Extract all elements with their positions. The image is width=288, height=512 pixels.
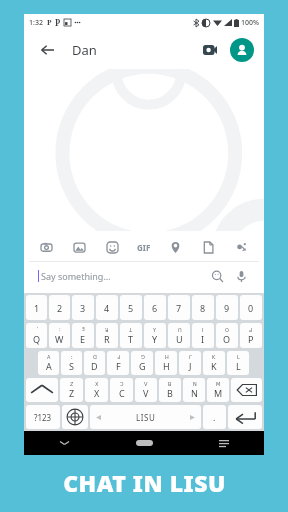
button[interactable]: LISU — [90, 405, 201, 429]
button[interactable]: ?123 — [26, 405, 60, 429]
button[interactable]: Hide keyboard — [24, 431, 104, 455]
button[interactable]: ꓤ — [96, 323, 118, 348]
button[interactable]: ꓛ — [110, 378, 133, 402]
staticText: ꓐ — [168, 381, 172, 387]
button[interactable]: ꓬ — [144, 323, 166, 348]
staticText: ꓬ — [153, 327, 157, 333]
staticText: 5 — [128, 302, 134, 314]
button[interactable]: Change language — [62, 405, 88, 429]
button[interactable]: ꓮ — [38, 351, 59, 375]
button[interactable]: 8 — [192, 295, 214, 320]
button[interactable]: ꓽ — [61, 351, 82, 375]
button[interactable]: ꓷ — [84, 351, 105, 375]
staticText: A — [46, 360, 52, 372]
button[interactable]: Ǝ — [72, 323, 94, 348]
staticText: GIF — [137, 242, 151, 253]
staticText: ꓒ — [249, 327, 253, 333]
staticText: 2 — [57, 302, 63, 314]
button[interactable]: Gallery — [71, 239, 88, 256]
staticText: 9 — [224, 302, 230, 314]
staticText: V — [143, 387, 149, 399]
staticText: ?123 — [34, 412, 52, 423]
button[interactable]: Location — [167, 239, 184, 256]
staticText: R — [104, 333, 110, 345]
button[interactable]: Camera — [38, 239, 55, 256]
button[interactable]: Stickers — [104, 239, 121, 256]
button[interactable]: Backspace — [231, 378, 262, 402]
staticText: ꓧ — [165, 354, 169, 360]
button[interactable]: ꓲ — [192, 323, 214, 348]
button[interactable]: 2 — [49, 295, 70, 320]
button[interactable]: Search emoji — [208, 267, 226, 285]
staticText: 100% — [241, 18, 259, 28]
staticText: ꓗ — [212, 354, 216, 360]
staticText: S — [69, 360, 74, 372]
button[interactable]: ꓕ — [120, 323, 142, 348]
button[interactable]: ꓠ — [183, 378, 205, 402]
button[interactable]: 3 — [72, 295, 94, 320]
staticText: ꓤ — [105, 327, 109, 333]
staticText: I — [201, 333, 205, 345]
button[interactable]: ꓐ — [159, 378, 181, 402]
staticText: CHAT IN LISU — [63, 467, 226, 498]
button[interactable]: Say something… — [41, 270, 208, 282]
button[interactable]: ꓒ — [240, 323, 262, 348]
button[interactable]: 9 — [216, 295, 238, 320]
button[interactable]: ꓫ — [85, 378, 108, 402]
button[interactable]: ꓧ — [155, 351, 177, 375]
button[interactable]: Voice input — [232, 267, 250, 285]
button[interactable]: GIF — [137, 242, 151, 253]
button[interactable]: 7 — [168, 295, 190, 320]
staticText: Q — [33, 333, 41, 345]
staticText: ꓲ — [202, 327, 204, 333]
button[interactable]: Contacts — [233, 239, 250, 256]
staticText: ꓠ — [193, 381, 197, 387]
staticText: E — [80, 333, 86, 345]
button[interactable]: 6 — [144, 295, 166, 320]
button[interactable]: 0 — [240, 295, 262, 320]
button[interactable]: ꓞ — [107, 351, 129, 375]
staticText: ꓮ — [47, 354, 51, 360]
staticText: Ǝ — [82, 326, 85, 333]
staticText: 8 — [200, 302, 206, 314]
staticText: G — [139, 360, 146, 372]
button[interactable]: ʼ — [26, 323, 47, 348]
button[interactable]: Shift — [26, 378, 58, 402]
staticText: ꓛ — [120, 381, 124, 387]
button[interactable]: Enter — [228, 405, 262, 429]
button[interactable]: ꓜ — [60, 378, 83, 402]
staticText: ꓫ — [95, 381, 99, 387]
button[interactable]: ꓦ — [135, 378, 157, 402]
button[interactable]: Back — [34, 37, 60, 63]
button[interactable]: ː — [49, 323, 70, 348]
staticText: F — [116, 360, 121, 372]
button[interactable]: ꓳ — [216, 323, 238, 348]
button[interactable]: Home — [104, 431, 184, 455]
button[interactable]: ꓗ — [203, 351, 225, 375]
button[interactable]: Contact avatar — [230, 38, 254, 62]
staticText: N — [191, 387, 198, 399]
staticText: LISU — [136, 412, 156, 423]
button[interactable]: . — [203, 405, 226, 429]
staticText: C — [119, 387, 125, 399]
button[interactable]: Video call — [198, 38, 222, 62]
staticText: 1 — [34, 302, 40, 314]
staticText: ꓩ — [189, 354, 192, 360]
button[interactable]: File — [200, 239, 217, 256]
staticText: P — [248, 333, 254, 345]
staticText: J — [189, 360, 192, 372]
button[interactable]: 5 — [120, 295, 142, 320]
staticText: ꓵ — [178, 327, 182, 333]
staticText: ꓕ — [129, 327, 133, 333]
staticText: ꓷ — [93, 354, 97, 360]
button[interactable]: ꓟ — [207, 378, 229, 402]
button[interactable]: 1 — [26, 295, 47, 320]
button[interactable]: ꓡ — [227, 351, 249, 375]
staticText: O — [223, 333, 231, 345]
button[interactable]: ꓨ — [131, 351, 153, 375]
button[interactable]: ꓩ — [179, 351, 201, 375]
button[interactable]: ꓵ — [168, 323, 190, 348]
staticText: 6 — [152, 302, 158, 314]
button[interactable]: 4 — [96, 295, 118, 320]
button[interactable]: Recent apps — [184, 431, 264, 455]
